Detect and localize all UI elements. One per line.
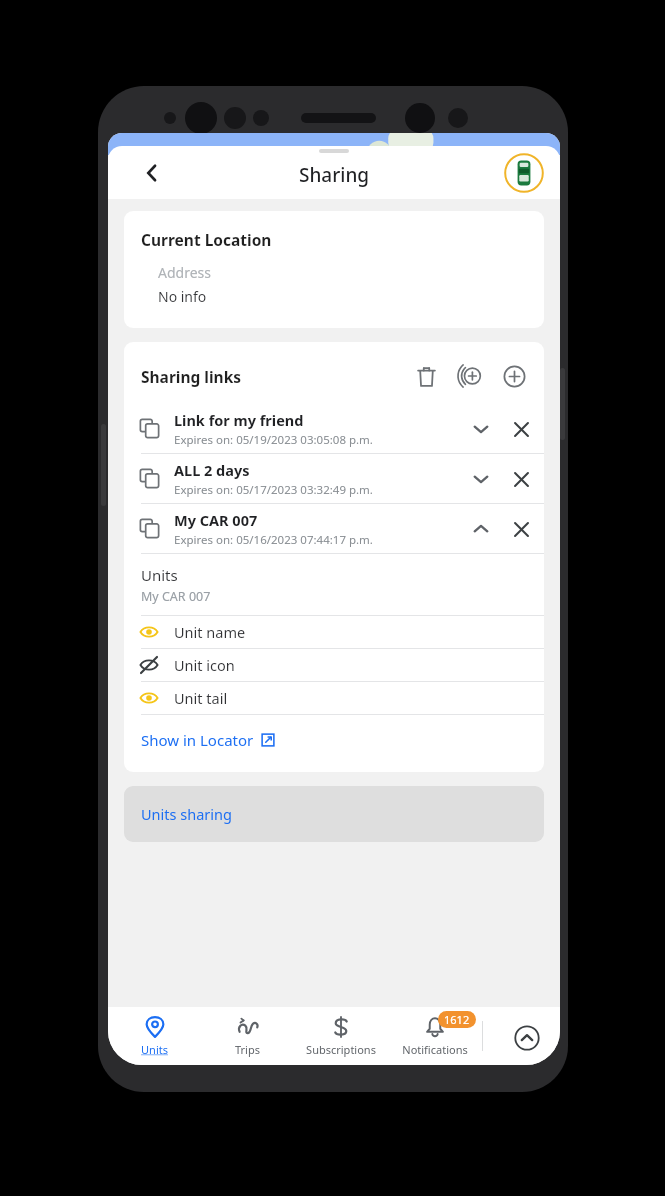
button[interactable]: Expand (460, 458, 502, 500)
button[interactable]: Unit name (124, 616, 544, 648)
button[interactable]: Expand (460, 408, 502, 450)
button[interactable]: Unit (502, 151, 546, 195)
button[interactable]: Show in Locator (141, 730, 275, 750)
staticText: Unit tail (174, 688, 228, 708)
button[interactable]: Collapse (460, 508, 502, 550)
button[interactable]: Remove (502, 458, 540, 500)
button[interactable]: My CAR 007 (124, 504, 544, 553)
button[interactable]: Units (108, 1007, 201, 1065)
button[interactable]: Remove (502, 508, 540, 550)
staticText: My CAR 007 (174, 510, 258, 530)
button[interactable]: Delete (408, 358, 444, 394)
button[interactable]: Add link (496, 358, 532, 394)
staticText: Trips (235, 1042, 260, 1057)
staticText: 1612 (444, 1012, 470, 1027)
button[interactable]: Add broadcast link (452, 358, 488, 394)
staticText: Units (141, 1042, 168, 1057)
button[interactable]: Remove (502, 408, 540, 450)
staticText: Units sharing (141, 804, 232, 824)
staticText: Subscriptions (306, 1042, 376, 1057)
staticText: Address (158, 263, 211, 282)
button[interactable]: Expand (507, 1018, 547, 1058)
button[interactable]: Link for my friend (124, 404, 544, 453)
button[interactable]: Unit tail (124, 682, 544, 714)
button[interactable]: 1612 (388, 1007, 482, 1065)
staticText: ALL 2 days (174, 460, 250, 480)
staticText: Show in Locator (141, 730, 254, 750)
staticText: Sharing links (141, 366, 242, 387)
staticText: Units (141, 565, 178, 585)
staticText: No info (158, 287, 207, 306)
staticText: My CAR 007 (141, 588, 211, 605)
button[interactable]: Trips (201, 1007, 294, 1065)
button[interactable]: Units sharing (124, 786, 544, 842)
staticText: Current Location (141, 229, 272, 250)
staticText: Link for my friend (174, 410, 304, 430)
staticText: Unit icon (174, 655, 235, 675)
staticText: Notifications (402, 1042, 468, 1057)
button[interactable]: ALL 2 days (124, 454, 544, 503)
button[interactable]: Subscriptions (294, 1007, 388, 1065)
staticText: Sharing (299, 162, 370, 188)
button[interactable]: Back (132, 153, 172, 193)
staticText: Unit name (174, 622, 246, 642)
staticText: Expires on: 05/16/2023 07:44:17 p.m. (174, 532, 373, 548)
staticText: Expires on: 05/17/2023 03:32:49 p.m. (174, 482, 373, 498)
button[interactable]: Unit icon (124, 649, 544, 681)
staticText: Expires on: 05/19/2023 03:05:08 p.m. (174, 432, 373, 448)
